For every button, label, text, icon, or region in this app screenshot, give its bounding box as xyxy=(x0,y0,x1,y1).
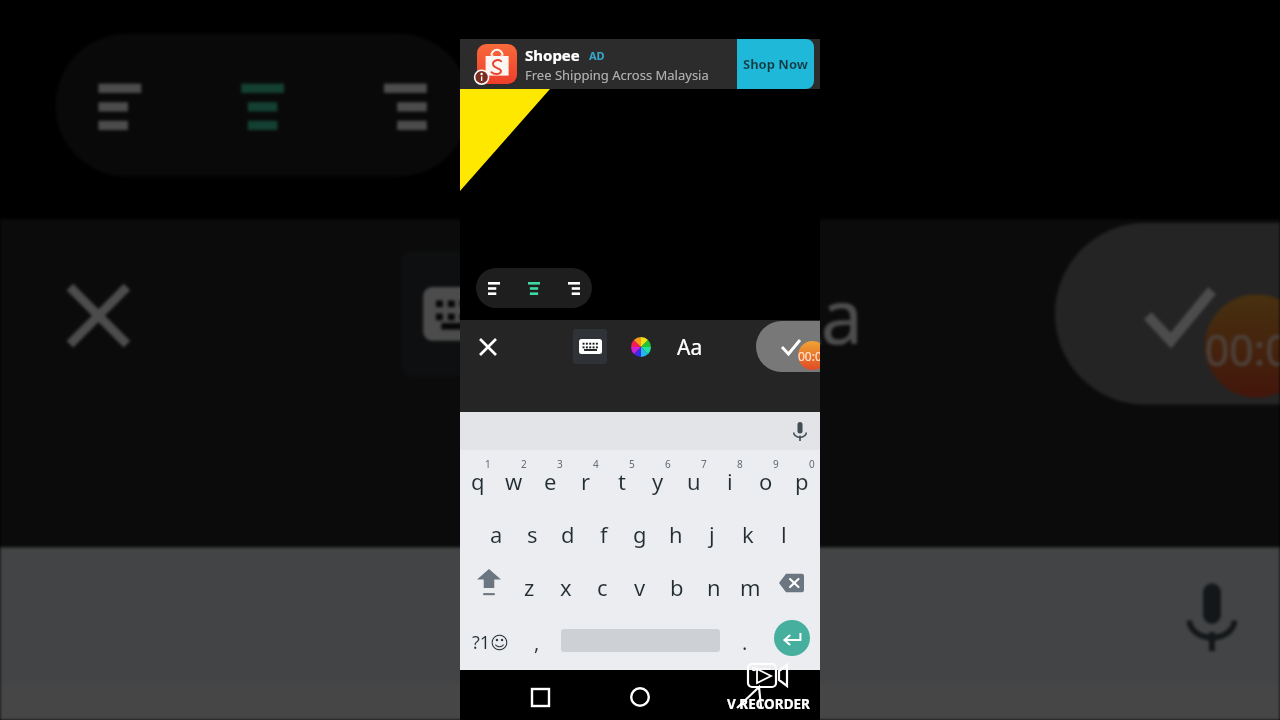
button[interactable]: 6 xyxy=(640,450,676,503)
staticText: k xyxy=(742,519,754,549)
button[interactable]: k xyxy=(730,503,766,556)
staticText: , xyxy=(534,629,540,656)
button[interactable]: h xyxy=(658,503,694,556)
button[interactable]: 4 xyxy=(568,450,604,503)
staticText: q xyxy=(471,466,485,496)
staticText: x xyxy=(560,572,572,602)
staticText: w xyxy=(505,466,523,496)
staticText: j xyxy=(709,519,715,549)
button[interactable]: s xyxy=(514,503,550,556)
button[interactable]: 7 xyxy=(769,683,898,720)
button[interactable]: Close xyxy=(23,241,173,391)
button[interactable]: Space xyxy=(559,612,721,666)
staticText: 6 xyxy=(730,708,751,720)
button[interactable]: Font xyxy=(671,327,709,367)
button[interactable]: 5 xyxy=(512,683,641,720)
button[interactable]: 7 xyxy=(676,450,712,503)
staticText: 2 xyxy=(216,708,238,720)
button[interactable]: g xyxy=(622,503,658,556)
button[interactable]: Shop Now xyxy=(737,39,814,89)
button[interactable]: Home xyxy=(618,675,662,719)
button[interactable]: Align center xyxy=(209,34,316,176)
staticText: 3 xyxy=(345,708,366,720)
button[interactable]: 2 xyxy=(496,450,532,503)
staticText: 7 xyxy=(859,708,880,720)
staticText: p xyxy=(795,466,809,496)
button[interactable]: Keyboard xyxy=(573,329,607,364)
staticText: t xyxy=(618,466,626,496)
button[interactable]: Align left xyxy=(479,268,509,308)
button[interactable]: . xyxy=(723,612,767,666)
button[interactable]: Recents xyxy=(518,675,562,719)
button[interactable]: Close xyxy=(467,326,509,368)
staticText: n xyxy=(707,572,721,602)
button[interactable]: z xyxy=(511,556,547,609)
button[interactable]: Enter xyxy=(774,620,810,656)
button[interactable]: Backspace xyxy=(769,556,814,609)
button[interactable]: 9 xyxy=(1026,683,1155,720)
staticText: h xyxy=(669,519,683,549)
staticText: o xyxy=(759,466,773,496)
button[interactable]: 5 xyxy=(604,450,640,503)
staticText: Aa xyxy=(773,266,866,369)
button[interactable]: 2 xyxy=(127,683,255,720)
button[interactable]: , xyxy=(515,612,559,666)
button[interactable]: 8 xyxy=(898,683,1026,720)
staticText: e xyxy=(544,466,557,496)
button[interactable]: 1 xyxy=(460,450,496,503)
button[interactable]: x xyxy=(547,556,584,609)
button[interactable]: Recording timer xyxy=(798,341,820,370)
button[interactable]: Align center xyxy=(519,268,549,308)
staticText: Shopee xyxy=(525,45,580,65)
staticText: AD xyxy=(589,48,605,63)
button[interactable]: f xyxy=(586,503,622,556)
button[interactable]: Align right xyxy=(559,268,589,308)
staticText: Shop Now xyxy=(743,55,808,73)
button[interactable]: Font xyxy=(752,244,887,387)
staticText: 5 xyxy=(629,457,635,471)
staticText: 8 xyxy=(737,457,743,471)
staticText: 2 xyxy=(521,457,527,471)
button[interactable]: Back xyxy=(718,675,762,719)
button[interactable]: v xyxy=(621,556,658,609)
button[interactable]: Align left xyxy=(66,34,173,176)
button[interactable]: Symbols xyxy=(465,612,515,666)
button[interactable]: 0 xyxy=(784,450,820,503)
staticText: y xyxy=(652,466,664,496)
button[interactable]: 8 xyxy=(712,450,748,503)
button[interactable]: d xyxy=(550,503,586,556)
staticText: z xyxy=(524,572,535,602)
staticText: 4 xyxy=(593,457,599,471)
staticText: Aa xyxy=(677,333,703,362)
button[interactable]: b xyxy=(658,556,695,609)
button[interactable]: Voice input xyxy=(780,412,820,450)
button[interactable]: a xyxy=(478,503,514,556)
button[interactable]: l xyxy=(766,503,802,556)
button[interactable]: Done xyxy=(1055,223,1280,405)
button[interactable]: Align right xyxy=(352,34,459,176)
button[interactable]: 1 xyxy=(0,683,127,720)
button[interactable]: Done xyxy=(756,321,820,372)
button[interactable]: 0 xyxy=(1155,683,1280,720)
staticText: 3 xyxy=(557,457,563,471)
button[interactable]: c xyxy=(584,556,621,609)
button[interactable]: 6 xyxy=(641,683,769,720)
button[interactable]: n xyxy=(695,556,732,609)
button[interactable]: j xyxy=(694,503,730,556)
button[interactable]: Colour xyxy=(624,330,657,363)
button[interactable]: 4 xyxy=(384,683,512,720)
button[interactable]: Shift xyxy=(466,556,511,609)
button[interactable]: 3 xyxy=(255,683,384,720)
button[interactable]: 3 xyxy=(532,450,568,503)
button[interactable]: Keyboard xyxy=(402,251,523,376)
staticText: 9 xyxy=(1116,708,1137,720)
button[interactable]: Shopee xyxy=(460,39,820,89)
button[interactable]: 9 xyxy=(748,450,784,503)
button[interactable]: Voice input xyxy=(1141,548,1280,683)
staticText: 00:02 xyxy=(798,348,820,364)
button[interactable]: m xyxy=(732,556,769,609)
button[interactable]: Recording timer xyxy=(1205,294,1280,398)
staticText: b xyxy=(670,572,684,602)
button[interactable]: Colour xyxy=(584,255,702,373)
